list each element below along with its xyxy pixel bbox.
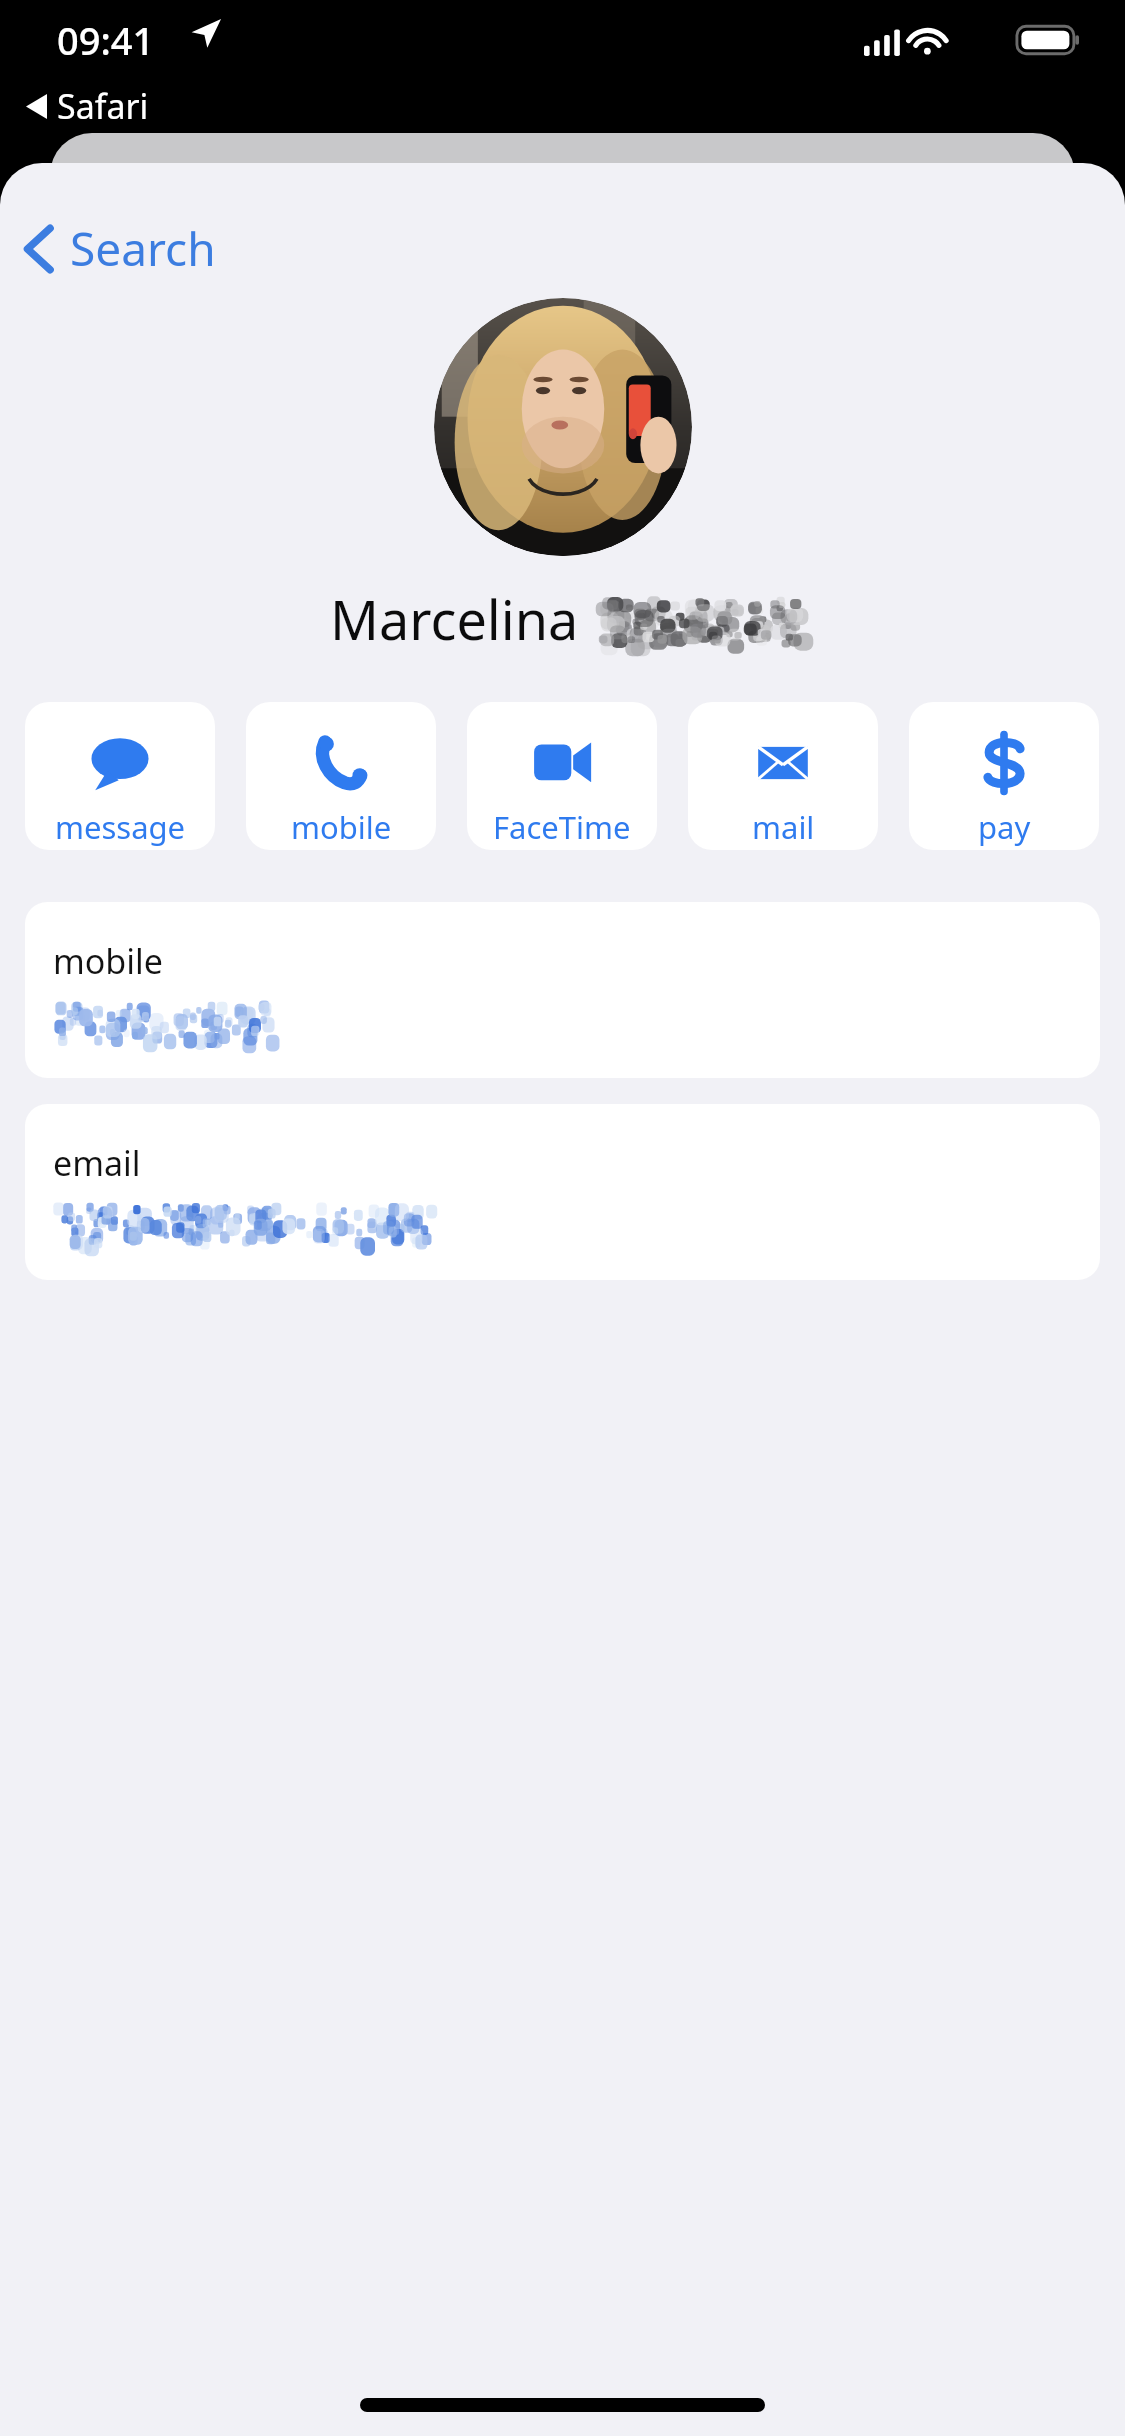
staticText: mail: [752, 806, 815, 848]
button[interactable]: message: [25, 702, 215, 850]
staticText: Safari: [57, 83, 149, 129]
staticText: mobile: [53, 938, 163, 984]
button[interactable]: pay: [909, 702, 1099, 850]
staticText: mobile: [291, 806, 392, 848]
staticText: email: [53, 1140, 141, 1186]
button[interactable]: email: [25, 1104, 1100, 1280]
staticText: Marcelina: [330, 582, 579, 656]
button[interactable]: mobile: [25, 902, 1100, 1078]
staticText: 09:41: [57, 14, 155, 66]
button[interactable]: mobile: [246, 702, 436, 850]
staticText: FaceTime: [493, 806, 631, 848]
staticText: message: [55, 806, 186, 848]
button[interactable]: Back to Safari: [22, 80, 153, 132]
button[interactable]: FaceTime: [467, 702, 657, 850]
staticText: pay: [978, 806, 1031, 848]
button[interactable]: mail: [688, 702, 878, 850]
button[interactable]: Search: [10, 207, 238, 290]
staticText: Search: [70, 217, 216, 280]
button[interactable]: Contact photo: [434, 298, 692, 556]
